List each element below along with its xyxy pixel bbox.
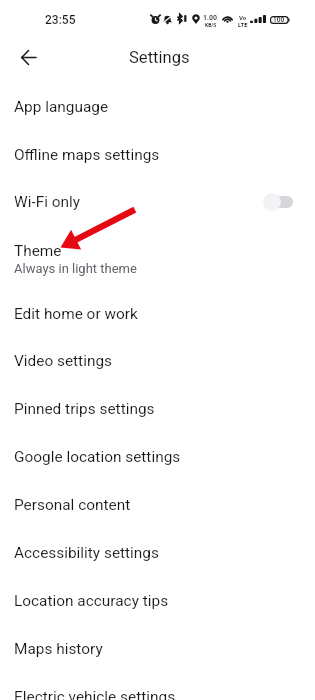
button[interactable]: Accessibility settings bbox=[0, 529, 315, 577]
button[interactable]: Theme bbox=[0, 226, 315, 290]
button[interactable]: Electric vehicle settings bbox=[0, 673, 315, 700]
button[interactable]: Google location settings bbox=[0, 433, 315, 481]
staticText: Theme bbox=[14, 242, 62, 260]
staticText: LTE bbox=[238, 21, 248, 28]
staticText: 1.00 bbox=[203, 14, 218, 22]
staticText: Location accuracy tips bbox=[14, 592, 169, 610]
button[interactable]: Location accuracy tips bbox=[0, 577, 315, 625]
button[interactable]: Maps history bbox=[0, 625, 315, 673]
button[interactable]: Personal content bbox=[0, 481, 315, 529]
staticText: Edit home or work bbox=[14, 305, 138, 323]
button[interactable]: App language bbox=[0, 83, 315, 131]
button[interactable]: Wi-Fi only bbox=[0, 178, 315, 226]
staticText: Settings bbox=[129, 48, 190, 67]
staticText: Electric vehicle settings bbox=[14, 688, 176, 700]
button[interactable]: Back bbox=[7, 36, 49, 78]
staticText: Google location settings bbox=[14, 448, 181, 466]
button[interactable]: Video settings bbox=[0, 337, 315, 384]
button[interactable]: Offline maps settings bbox=[0, 131, 315, 178]
staticText: Always in light theme bbox=[14, 261, 137, 276]
staticText: App language bbox=[14, 98, 109, 116]
staticText: Pinned trips settings bbox=[14, 400, 155, 418]
button[interactable]: Edit home or work bbox=[0, 290, 315, 337]
staticText: Personal content bbox=[14, 496, 131, 514]
staticText: 100 bbox=[273, 16, 285, 24]
staticText: Offline maps settings bbox=[14, 146, 160, 164]
staticText: Wi-Fi only bbox=[14, 193, 81, 211]
staticText: Vo bbox=[239, 14, 247, 21]
button[interactable]: Pinned trips settings bbox=[0, 384, 315, 433]
staticText: 23:55 bbox=[45, 13, 76, 27]
staticText: KB/S bbox=[205, 22, 217, 28]
staticText: Accessibility settings bbox=[14, 544, 159, 562]
staticText: Video settings bbox=[14, 352, 112, 370]
staticText: Maps history bbox=[14, 640, 103, 658]
